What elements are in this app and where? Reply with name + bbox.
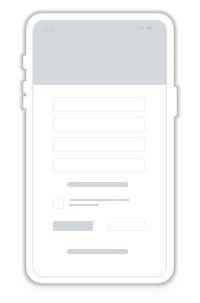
button[interactable]: Secondary action <box>107 221 147 231</box>
button[interactable]: Input field 1 <box>53 97 145 112</box>
button[interactable]: Checkbox <box>53 198 64 209</box>
button[interactable]: Input field 3 <box>53 137 145 152</box>
button[interactable]: Input field 4 <box>53 158 145 173</box>
button[interactable]: Primary action <box>53 221 93 231</box>
button[interactable]: Input field 2 <box>53 117 145 132</box>
other: Status icons <box>137 26 153 30</box>
staticText: 15:51 <box>43 27 56 34</box>
